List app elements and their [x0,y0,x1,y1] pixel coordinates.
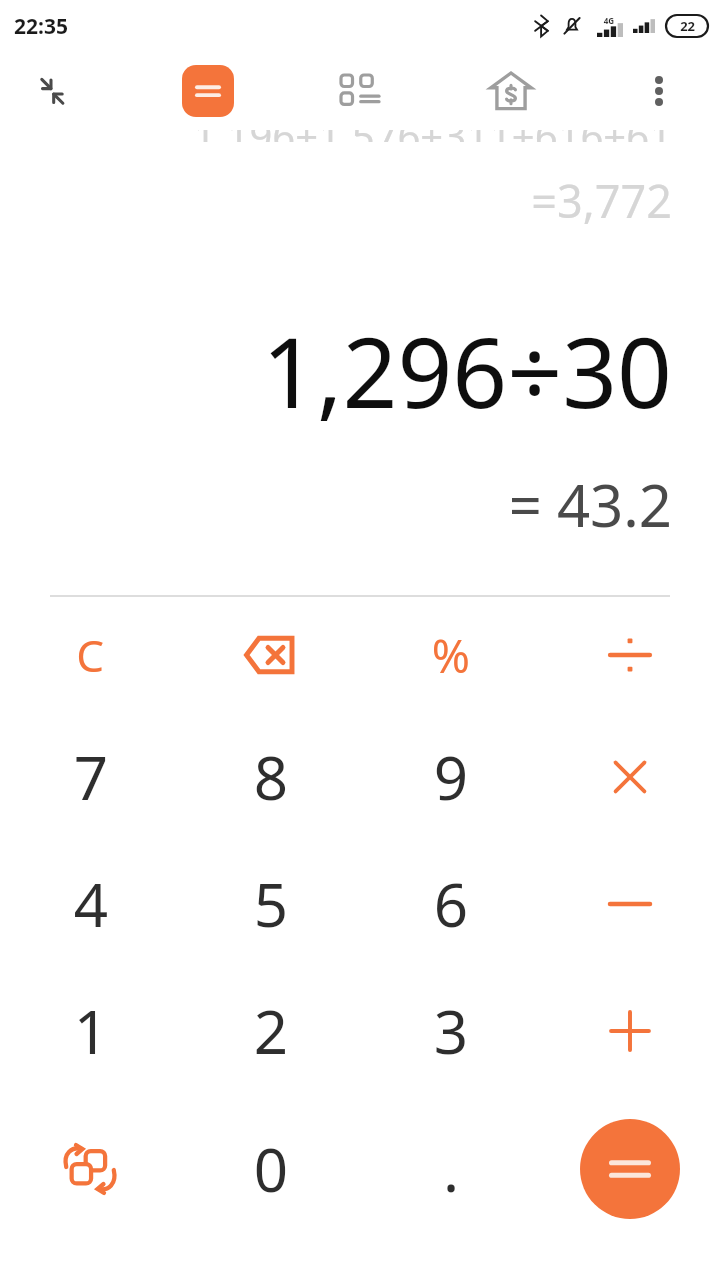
staticText: =3,772 [531,170,672,231]
staticText: 22:35 [14,12,68,41]
button[interactable]: 7 [0,713,180,840]
button[interactable]: More options [629,61,689,121]
staticText: 8 [253,736,288,818]
staticText: % [431,624,470,687]
other: Percent [431,624,470,687]
staticText: 7 [73,736,108,818]
button[interactable]: Mortgage [481,61,541,121]
staticText: 1 [73,990,108,1072]
staticText: 0 [253,1128,288,1210]
staticText: 4G [603,15,614,26]
button[interactable]: Clear [0,597,180,713]
button[interactable]: Multiply [540,713,720,840]
button[interactable]: Equals [540,1094,720,1244]
button[interactable]: Convert [0,1094,180,1244]
other: Divide [608,633,652,677]
button[interactable]: 9 [360,713,540,840]
other: Convert [63,1144,117,1194]
other: Backspace [245,636,295,674]
staticText: 2 [253,990,288,1072]
staticText: 9 [433,736,468,818]
button[interactable]: Equals [580,1119,680,1219]
staticText: 4 [73,863,108,945]
staticText: 22 [680,17,695,35]
button[interactable]: 1,196+1,576+311+616+61 [0,130,720,595]
button[interactable]: 3 [360,967,540,1094]
other: Plus [608,1009,652,1053]
button[interactable]: 4 [0,840,180,967]
staticText: 3 [433,990,468,1072]
staticText: 1,296÷30 [261,305,672,436]
button[interactable]: Plus [540,967,720,1094]
button[interactable]: 1 [0,967,180,1094]
button[interactable]: . [360,1094,540,1244]
staticText: C [76,625,104,685]
other: Minus [610,899,650,909]
button[interactable]: Percent [360,597,540,713]
staticText: 6 [433,863,468,945]
button[interactable]: Collapse [24,63,80,119]
button[interactable]: Minus [540,840,720,967]
button[interactable]: Divide [540,597,720,713]
staticText: 1,196+1,576+311+616+61 [192,130,672,142]
staticText: = 43.2 [508,465,672,544]
button[interactable]: 8 [180,713,360,840]
button[interactable]: 6 [360,840,540,967]
button[interactable]: 5 [180,840,360,967]
staticText: . [442,1128,459,1210]
button[interactable]: 2 [180,967,360,1094]
other: Clear [76,625,104,685]
other: Multiply [611,758,649,796]
button[interactable]: Calculator [178,61,238,121]
button[interactable]: Unit converter [330,61,390,121]
button[interactable]: 0 [180,1094,360,1244]
button[interactable]: Backspace [180,597,360,713]
staticText: 5 [253,863,288,945]
